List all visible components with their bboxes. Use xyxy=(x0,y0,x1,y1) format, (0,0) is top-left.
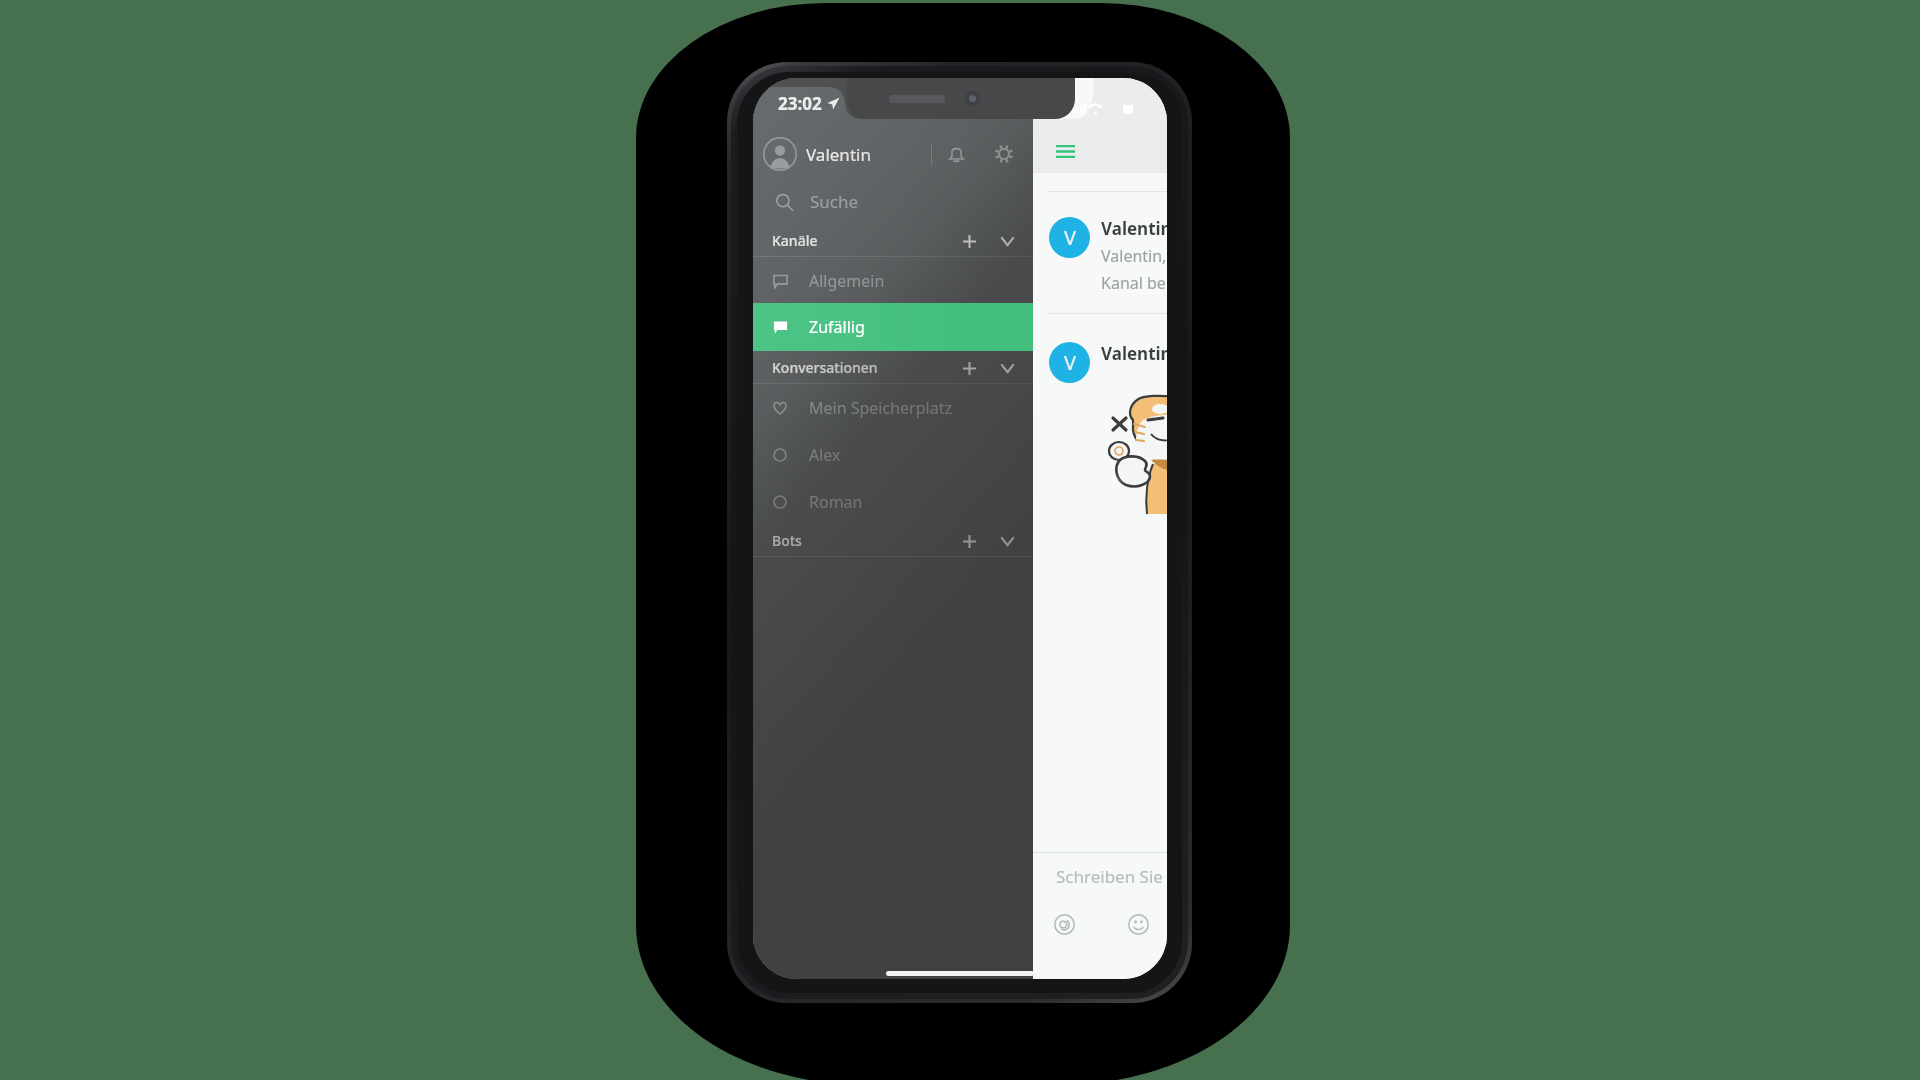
staticText: Valentin,L xyxy=(1101,245,1167,267)
staticText: Kanal bei xyxy=(1101,272,1167,294)
button[interactable]: Notifications xyxy=(943,141,969,167)
button[interactable]: Alex xyxy=(753,431,1167,478)
staticText: Valentin xyxy=(1101,342,1167,365)
staticText: Zufällig xyxy=(809,316,865,338)
button[interactable]: V xyxy=(1033,314,1167,383)
button[interactable]: Collapse xyxy=(998,232,1016,250)
button[interactable]: Konversationen xyxy=(753,352,1167,383)
button[interactable]: Settings xyxy=(991,141,1017,167)
button[interactable]: Add xyxy=(960,232,978,250)
button[interactable]: Kanäle xyxy=(753,225,1167,256)
staticText: V xyxy=(1064,349,1076,376)
button[interactable]: Bots xyxy=(753,525,1167,556)
button[interactable]: Mention xyxy=(1054,914,1075,935)
staticText: V xyxy=(1064,224,1076,251)
staticText: Valentin xyxy=(806,143,871,166)
button[interactable]: Menu xyxy=(1051,139,1080,163)
button[interactable]: Allgemein xyxy=(753,257,1167,304)
staticText: Allgemein xyxy=(809,270,885,292)
button[interactable]: V xyxy=(1033,192,1167,313)
button[interactable]: Collapse xyxy=(998,532,1016,550)
staticText: Bots xyxy=(772,531,802,550)
button[interactable]: Add xyxy=(960,532,978,550)
staticText: Konversationen xyxy=(772,358,878,377)
staticText: Roman xyxy=(809,491,863,513)
button[interactable]: Mein Speicherplatz xyxy=(753,384,1167,431)
staticText: Suche xyxy=(810,190,859,213)
staticText: 23:02 xyxy=(778,92,822,115)
staticText: Valentin xyxy=(1101,217,1167,240)
staticText: Mein Speicherplatz xyxy=(809,397,952,419)
button[interactable]: Emoji xyxy=(1128,914,1149,935)
button[interactable]: Suche xyxy=(753,178,1167,225)
button[interactable]: Zufällig xyxy=(753,303,1167,351)
button[interactable]: Add xyxy=(960,359,978,377)
staticText: Alex xyxy=(809,444,841,466)
staticText: Schreiben Sie I xyxy=(1056,865,1167,888)
button[interactable]: Roman xyxy=(753,478,1167,525)
staticText: Kanäle xyxy=(772,231,818,250)
button[interactable]: Collapse xyxy=(998,359,1016,377)
